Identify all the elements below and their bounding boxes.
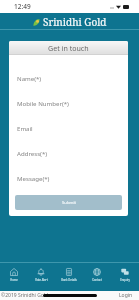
- staticText: Srinidhi Gold: [43, 15, 107, 29]
- button[interactable]: Rate Alert: [27, 262, 55, 287]
- staticText: 12:49: [14, 2, 31, 11]
- staticText: Get in touch: [48, 43, 89, 53]
- staticText: Contact: [92, 278, 102, 282]
- button[interactable]: Enquiry: [111, 262, 139, 287]
- staticText: Home: [10, 278, 18, 282]
- staticText: Submit: [62, 200, 76, 206]
- staticText: Mobile Number(*): [17, 99, 69, 107]
- staticText: Rate Alert: [35, 278, 48, 282]
- staticText: Name(*): [17, 74, 42, 82]
- button[interactable]: Bank Details: [55, 262, 83, 287]
- button[interactable]: Contact: [83, 262, 111, 287]
- button[interactable]: Login: [119, 292, 133, 299]
- staticText: ©2019 Srinidhi Gold: [1, 292, 49, 299]
- button[interactable]: Home: [0, 262, 27, 287]
- staticText: Address(*): [17, 149, 48, 157]
- staticText: Email: [17, 124, 33, 132]
- staticText: Message(*): [17, 174, 50, 182]
- button[interactable]: Submit: [15, 195, 122, 210]
- staticText: Enquiry: [120, 278, 130, 282]
- staticText: Bank Details: [61, 278, 77, 282]
